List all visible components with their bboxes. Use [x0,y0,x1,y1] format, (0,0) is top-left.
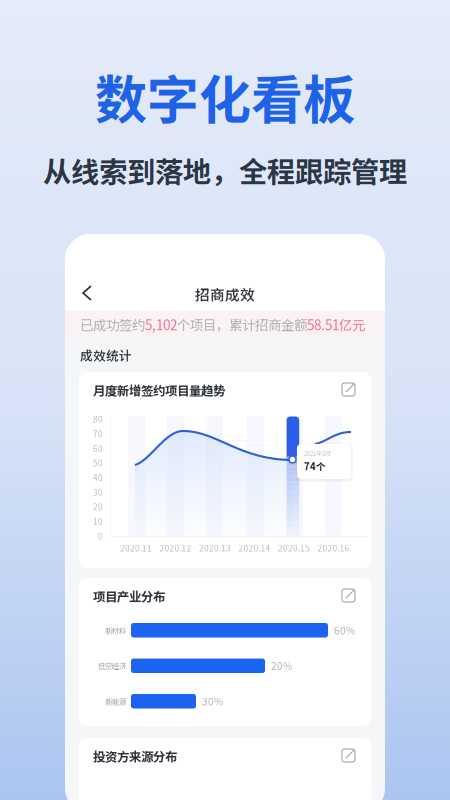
button[interactable]: Expand chart [341,748,357,764]
staticText: 40 [93,471,103,483]
staticText: 30% [202,694,223,708]
staticText: 30 [93,486,103,498]
staticText: 2020.14 [238,542,270,554]
staticText: 月度新增签约项目量趋势 [93,381,225,399]
staticText: 投资方来源分布 [93,747,177,765]
button[interactable]: Expand chart [341,588,357,604]
staticText: 招商成效 [195,283,255,305]
staticText: 新材料 [105,625,126,636]
button[interactable]: Expand chart [341,382,357,398]
staticText: 2020.16 [317,542,349,554]
staticText: 2020.15 [278,542,310,554]
staticText: 60 [93,442,103,454]
button[interactable]: Back [70,278,100,308]
staticText: 新能源 [105,696,126,707]
staticText: 2020.11 [120,542,152,554]
staticText: 项目产业分布 [93,587,165,605]
staticText: 2021年3月 [304,449,331,458]
staticText: 10 [93,515,103,527]
staticText: 0 [98,530,103,542]
staticText: 74个 [304,459,326,473]
staticText: 数字化看板 [95,58,355,134]
staticText: 80 [93,413,103,425]
staticText: 50 [93,457,103,469]
staticText: 5,102 [145,315,177,334]
staticText: 从线索到落地，全程跟踪管理 [43,149,407,190]
staticText: 低空经济 [98,660,126,671]
staticText: 个项目， [177,315,229,334]
staticText: 成效统计 [80,346,132,364]
staticText: 58.51亿元 [307,315,365,334]
staticText: 2020.12 [159,542,191,554]
staticText: 2020.13 [199,542,231,554]
staticText: 已成功签约 [80,315,145,334]
staticText: 20 [93,501,103,513]
staticText: 70 [93,428,103,440]
staticText: 累计招商金额 [229,315,307,334]
staticText: 60% [334,623,355,637]
staticText: 20% [271,658,292,673]
